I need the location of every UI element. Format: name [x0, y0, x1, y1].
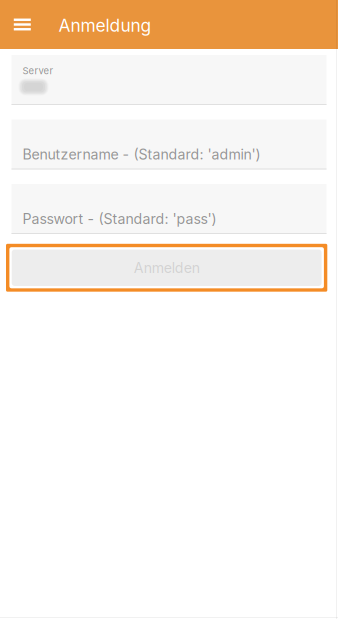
- button[interactable]: Anmelden: [6, 244, 327, 292]
- staticText: Benutzername - (Standard: 'admin'): [22, 146, 260, 163]
- staticText: Passwort - (Standard: 'pass'): [22, 210, 216, 227]
- staticText: Anmelden: [134, 259, 200, 276]
- button[interactable]: Menu: [0, 0, 58, 49]
- staticText: Anmeldung: [58, 15, 151, 36]
- staticText: Server: [22, 65, 53, 76]
